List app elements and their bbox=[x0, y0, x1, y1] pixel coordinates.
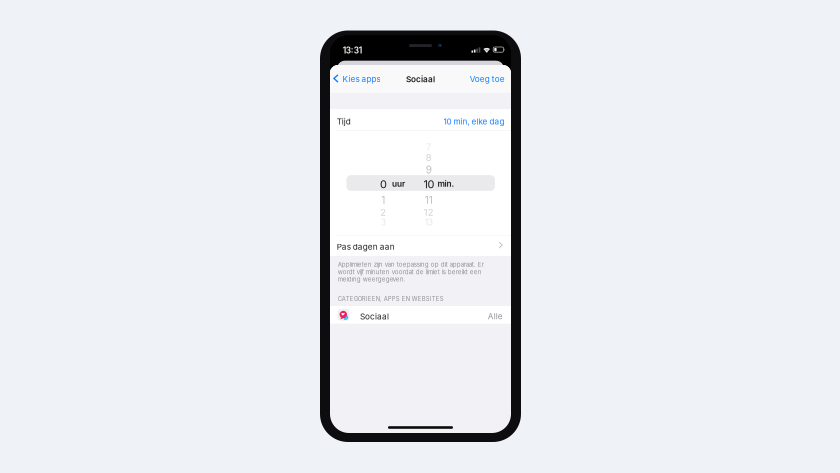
staticText: 2 bbox=[380, 207, 386, 218]
staticText: 3 bbox=[381, 217, 386, 227]
staticText: Pas dagen aan bbox=[337, 242, 395, 252]
staticText: Sociaal bbox=[406, 74, 435, 84]
button[interactable]: Pas dagen aan bbox=[330, 235, 511, 256]
staticText: 10 bbox=[423, 178, 434, 191]
staticText: 10 min, elke dag bbox=[443, 116, 504, 126]
button[interactable]: Sociaal bbox=[330, 306, 511, 324]
staticText: 0 bbox=[380, 178, 387, 191]
staticText: 1 bbox=[381, 194, 385, 206]
staticText: Alle bbox=[488, 311, 503, 321]
staticText: 7 bbox=[426, 142, 431, 152]
staticText: min. bbox=[438, 179, 455, 189]
staticText: Applimieten zijn van toepassing op dit a… bbox=[338, 261, 484, 283]
staticText: Sociaal bbox=[360, 311, 389, 321]
staticText: uur bbox=[392, 179, 405, 189]
button[interactable]: Voeg toe bbox=[464, 69, 508, 89]
staticText: Tijd bbox=[337, 116, 351, 126]
staticText: Kies apps bbox=[342, 74, 380, 84]
button[interactable]: Tijd bbox=[330, 109, 511, 131]
staticText: 13:31 bbox=[343, 45, 362, 55]
staticText: 8 bbox=[426, 152, 432, 163]
button[interactable]: Kies apps bbox=[330, 69, 382, 89]
staticText: CATEGORIEËN, APPS EN WEBSITES bbox=[338, 295, 444, 302]
staticText: 13 bbox=[425, 217, 433, 227]
staticText: 11 bbox=[425, 194, 433, 206]
staticText: 9 bbox=[426, 164, 432, 176]
staticText: 12 bbox=[424, 207, 434, 218]
staticText: Voeg toe bbox=[470, 74, 505, 84]
